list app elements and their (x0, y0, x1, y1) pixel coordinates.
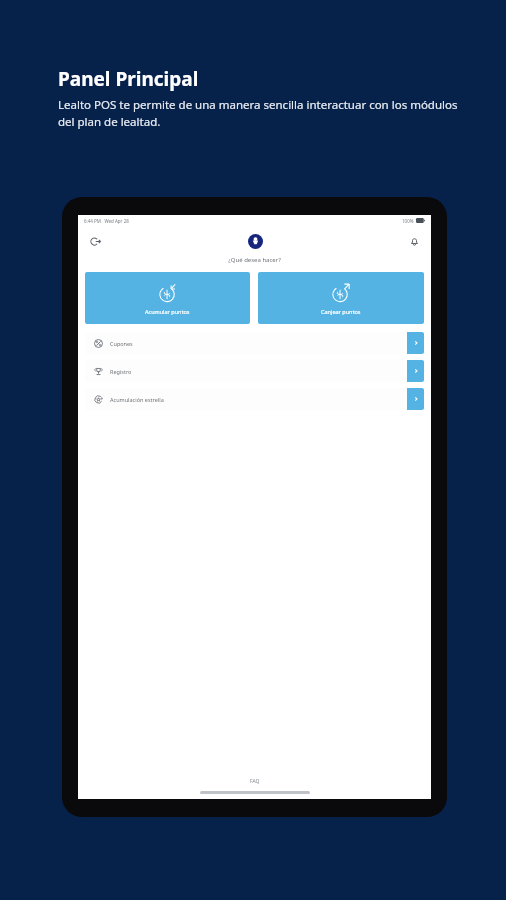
staticText: Panel Principal (58, 66, 199, 92)
staticText: 100% (402, 218, 414, 224)
staticText: ¿Qué desea hacer? (228, 256, 281, 264)
button[interactable]: Cerrar sesión (86, 232, 104, 250)
staticText: Canjear puntos (321, 308, 361, 315)
button[interactable]: Lealto (245, 231, 265, 251)
staticText: Acumulación estrella (110, 396, 164, 403)
staticText: 6:44 PM Wed Apr 28 (84, 218, 129, 224)
button[interactable]: Registro (85, 360, 424, 382)
button[interactable]: FAQ (250, 778, 260, 785)
staticText: Acumular puntos (145, 308, 190, 315)
staticText: Registro (110, 368, 132, 375)
button[interactable]: Acumular puntos (85, 272, 250, 324)
button[interactable]: Notificaciones (405, 232, 423, 250)
button[interactable]: Cupones (85, 332, 424, 354)
staticText: Lealto POS te permite de una manera senc… (58, 97, 466, 129)
button[interactable]: Canjear puntos (258, 272, 424, 324)
staticText: Cupones (110, 340, 133, 347)
button[interactable]: Acumulación estrella (85, 388, 424, 410)
